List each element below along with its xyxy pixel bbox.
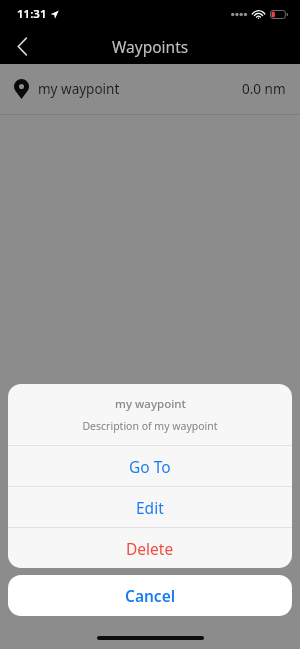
staticText: Edit [136, 497, 164, 518]
staticText: my waypoint [115, 396, 186, 412]
button[interactable]: Delete [8, 528, 292, 568]
staticText: my waypoint [38, 80, 120, 98]
staticText: Description of my waypoint [82, 419, 218, 433]
button[interactable]: Cancel [8, 575, 292, 616]
staticText: Cancel [125, 585, 176, 606]
button[interactable]: Back [0, 28, 44, 64]
staticText: 11:31 [17, 6, 47, 22]
staticText: Go To [129, 456, 171, 477]
staticText: 0.0 nm [242, 80, 286, 98]
button[interactable]: Go To [8, 446, 292, 486]
staticText: Waypoints [112, 36, 189, 57]
button[interactable]: Edit [8, 487, 292, 527]
staticText: Delete [126, 538, 174, 559]
button[interactable]: my waypoint [0, 64, 300, 114]
